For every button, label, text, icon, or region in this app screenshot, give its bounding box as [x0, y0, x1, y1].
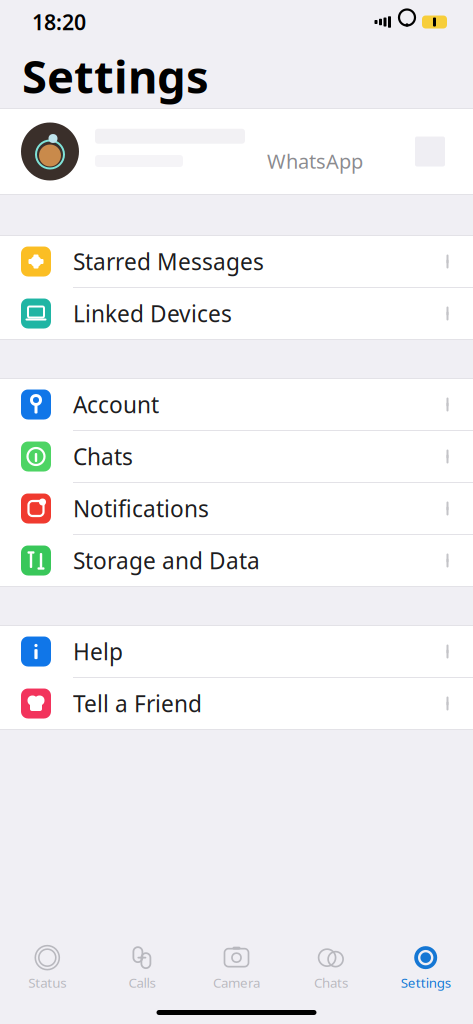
button[interactable]: Calls [95, 939, 189, 995]
staticText: Notifications [73, 493, 209, 523]
staticText: Chats [73, 441, 133, 471]
staticText: 18:20 [32, 8, 86, 36]
staticText: WhatsApp [267, 148, 363, 174]
button[interactable]: Settings [378, 939, 473, 995]
button[interactable]: Storage and Data [0, 535, 473, 586]
staticText: Status [28, 974, 66, 991]
staticText: Chats [314, 974, 348, 991]
button[interactable]: Notifications [0, 483, 473, 535]
staticText: Tell a Friend [73, 688, 202, 718]
staticText: Settings [22, 46, 209, 106]
button[interactable]: Chats [0, 431, 473, 483]
button[interactable]: Status [0, 939, 95, 995]
staticText: Camera [213, 974, 260, 991]
staticText: Help [73, 636, 123, 666]
staticText: Calls [128, 974, 155, 991]
button[interactable]: Chats [284, 939, 378, 995]
button[interactable]: Linked Devices [0, 288, 473, 339]
staticText: Storage and Data [73, 545, 260, 575]
button[interactable]: Starred Messages [0, 236, 473, 288]
button[interactable]: Help [0, 626, 473, 678]
staticText: Settings [401, 974, 451, 991]
button[interactable]: WhatsApp [0, 109, 473, 194]
button[interactable]: Tell a Friend [0, 678, 473, 729]
button[interactable]: Camera [189, 939, 284, 995]
staticText: Account [73, 389, 159, 419]
staticText: Starred Messages [73, 246, 264, 276]
staticText: Linked Devices [73, 298, 232, 328]
button[interactable]: Account [0, 379, 473, 431]
